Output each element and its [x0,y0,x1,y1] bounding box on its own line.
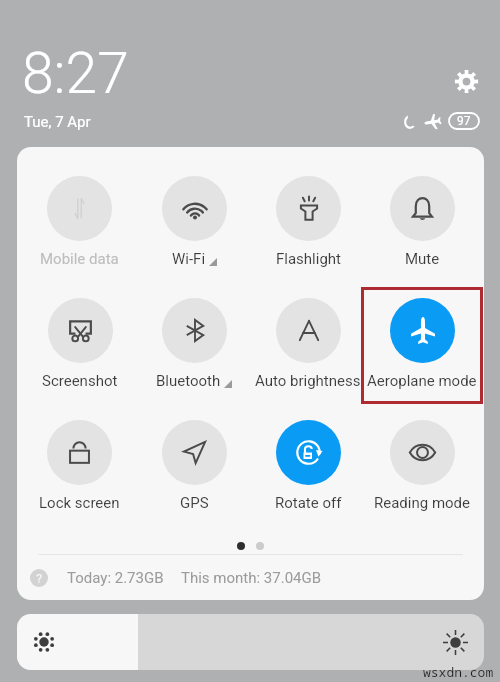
button[interactable]: Settings [448,63,485,100]
staticText: Today: 2.73GB [67,569,164,587]
staticText: ? [36,571,43,586]
staticText: This month: 37.04GB [181,569,322,587]
staticText: Tue, 7 Apr [24,113,91,131]
staticText: Flashlight [276,250,341,268]
button[interactable]: Wi-Fi [137,147,251,269]
staticText: 8:27 [22,40,129,107]
staticText: wsxdn.com [423,663,494,681]
button[interactable]: Mute [365,147,479,269]
button[interactable]: Flashlight [251,147,365,269]
staticText: Aeroplane mode [367,372,477,390]
staticText: GPS [180,494,209,512]
staticText: Mute [405,250,440,268]
button[interactable]: Reading mode [365,391,479,513]
staticText: Lock screen [39,494,120,512]
button[interactable]: Auto brightness [251,269,365,391]
staticText: Mobile data [40,250,119,268]
button[interactable]: Screenshot [22,269,137,391]
staticText: 97 [457,114,471,128]
button[interactable]: Bluetooth [137,269,251,391]
staticText: Screenshot [42,372,118,390]
button[interactable]: Mobile data [22,147,137,269]
button[interactable]: GPS [137,391,251,513]
button[interactable]: Aeroplane mode [365,269,479,391]
button[interactable]: Rotate off [251,391,365,513]
button[interactable]: Brightness [17,614,484,670]
staticText: Wi-Fi [172,250,206,268]
staticText: Rotate off [275,494,342,512]
button[interactable]: Lock screen [22,391,137,513]
staticText: Bluetooth [156,372,221,390]
staticText: Auto brightness [255,372,361,390]
staticText: Reading mode [374,494,471,512]
